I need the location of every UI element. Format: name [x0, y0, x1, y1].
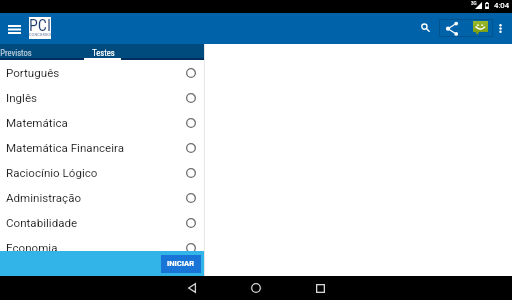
button[interactable]: Administração: [0, 185, 204, 210]
button[interactable]: Back: [160, 276, 224, 300]
button[interactable]: Contabilidade: [0, 210, 204, 235]
button[interactable]: Previstos: [0, 45, 59, 60]
staticText: Matemática: [6, 116, 186, 130]
staticText: 4:04: [494, 1, 510, 10]
button[interactable]: Share: [440, 16, 465, 40]
staticText: Contabilidade: [6, 216, 186, 230]
button[interactable]: Português: [0, 60, 204, 85]
staticText: INICIAR: [167, 259, 195, 268]
button[interactable]: More options: [492, 19, 508, 37]
button[interactable]: Send message: [467, 16, 493, 40]
staticText: Português: [6, 66, 186, 80]
staticText: 3G: [471, 1, 477, 6]
button[interactable]: Home: [224, 276, 288, 300]
staticText: Economia: [6, 241, 186, 255]
staticText: Raciocínio Lógico: [6, 166, 186, 180]
staticText: CONCURSOS: [29, 32, 51, 37]
button[interactable]: Raciocínio Lógico: [0, 160, 204, 185]
staticText: PCI: [29, 16, 51, 35]
button[interactable]: Matemática: [0, 110, 204, 135]
button[interactable]: Inglês: [0, 85, 204, 110]
button[interactable]: INICIAR: [161, 255, 201, 273]
staticText: Previstos: [0, 48, 32, 58]
button[interactable]: Open navigation drawer: [1, 16, 27, 42]
button[interactable]: Economia: [0, 235, 204, 260]
button[interactable]: Testes: [59, 45, 147, 60]
staticText: Inglês: [6, 91, 186, 105]
staticText: Testes: [92, 48, 115, 58]
staticText: Matemática Financeira: [6, 141, 186, 155]
staticText: Administração: [6, 191, 186, 205]
button[interactable]: Recent apps: [288, 276, 352, 300]
button[interactable]: Search: [414, 16, 438, 40]
button[interactable]: Matemática Financeira: [0, 135, 204, 160]
